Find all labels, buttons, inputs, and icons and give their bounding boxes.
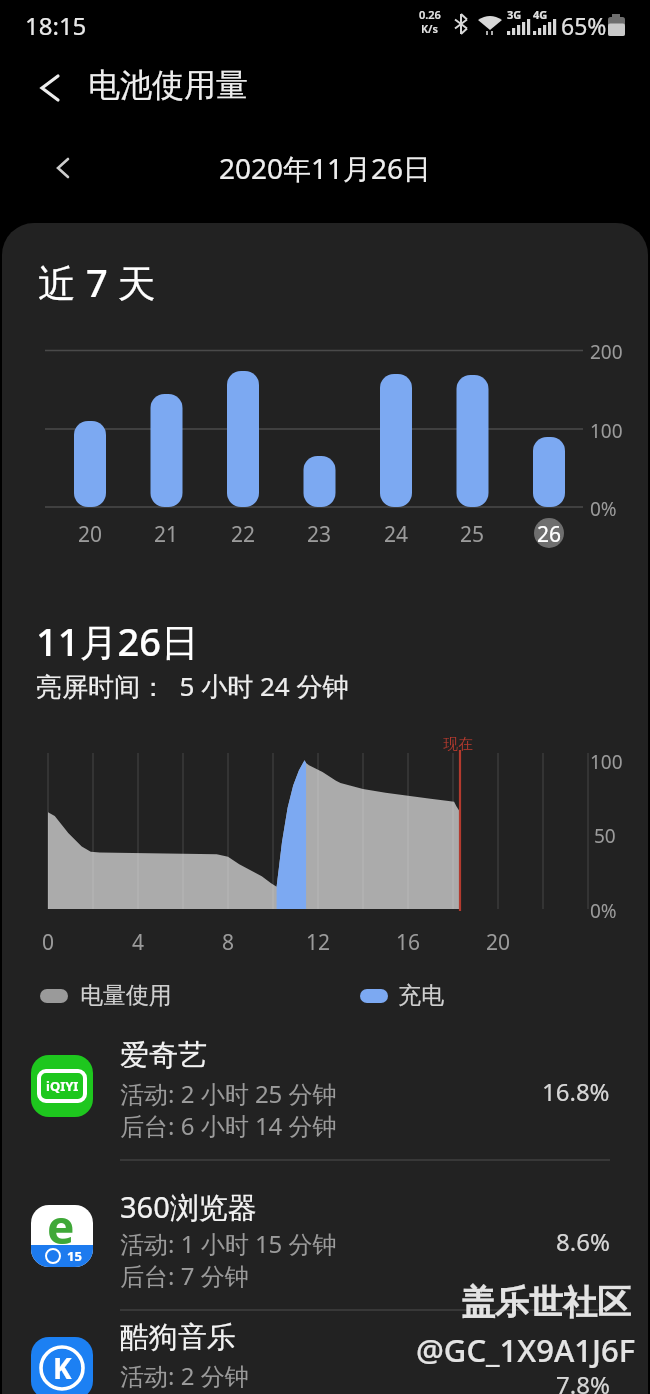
staticText: 后台: 7 分钟 xyxy=(120,1259,249,1292)
staticText: 活动: 2 分钟 xyxy=(120,1359,249,1392)
staticText: 0.26 xyxy=(419,7,441,22)
staticText: 24 xyxy=(384,520,409,549)
staticText: K/s xyxy=(421,21,438,36)
staticText: 20 xyxy=(78,520,103,549)
staticText: 8.6% xyxy=(556,1225,610,1258)
staticText: 0 xyxy=(42,928,55,957)
staticText: @GC_1X9A1J6F xyxy=(416,1329,636,1371)
button[interactable] xyxy=(2,1315,648,1394)
staticText: K xyxy=(53,1349,72,1387)
staticText: 18:15 xyxy=(25,9,87,42)
staticText: 26 xyxy=(537,520,562,549)
button[interactable] xyxy=(30,66,74,110)
staticText: 盖乐世社区 xyxy=(461,1281,631,1324)
staticText: 近 7 天 xyxy=(38,256,156,308)
staticText: 100 xyxy=(590,418,623,444)
staticText: 活动: 2 小时 25 分钟 xyxy=(120,1077,337,1110)
staticText: 20 xyxy=(486,928,511,957)
staticText: iQIYI xyxy=(46,1077,79,1095)
staticText: 电池使用量 xyxy=(88,65,248,105)
staticText: 15 xyxy=(67,1247,82,1265)
staticText: 活动: 1 小时 15 分钟 xyxy=(120,1227,337,1260)
staticText: 100 xyxy=(590,749,623,775)
staticText: 7.8% xyxy=(556,1368,610,1394)
button[interactable]: 26 xyxy=(529,520,569,549)
staticText: 3G xyxy=(507,7,522,22)
staticText: 16.8% xyxy=(542,1075,610,1108)
staticText: 亮屏时间： 5 小时 24 分钟 xyxy=(36,668,349,704)
staticText: 16 xyxy=(396,928,421,957)
staticText: 2020年11月26日 xyxy=(0,149,650,187)
staticText: 4G xyxy=(533,7,548,22)
staticText: 22 xyxy=(231,520,256,549)
staticText: 后台: 6 小时 14 分钟 xyxy=(120,1109,337,1142)
staticText: 0% xyxy=(590,898,617,924)
button[interactable] xyxy=(2,1033,648,1173)
button[interactable]: 2020年11月26日 xyxy=(0,140,650,196)
button[interactable] xyxy=(2,1183,648,1323)
staticText: 0% xyxy=(590,496,617,522)
staticText: 12 xyxy=(306,928,331,957)
staticText: 21 xyxy=(154,520,179,549)
staticText: 爱奇艺 xyxy=(120,1037,207,1074)
staticText: 电量使用 xyxy=(80,981,172,1010)
staticText: 8 xyxy=(222,928,235,957)
staticText: 200 xyxy=(590,339,623,365)
staticText: 酷狗音乐 xyxy=(120,1319,236,1356)
staticText: 现在 xyxy=(443,735,473,754)
staticText: 25 xyxy=(460,520,485,549)
staticText: 23 xyxy=(307,520,332,549)
staticText: 65% xyxy=(561,10,607,41)
staticText: 50 xyxy=(594,823,616,849)
staticText: 充电 xyxy=(398,981,444,1010)
staticText: 11月26日 xyxy=(36,615,199,667)
staticText: 4 xyxy=(132,928,145,957)
staticText: e xyxy=(47,1205,75,1257)
staticText: 360浏览器 xyxy=(120,1187,257,1227)
